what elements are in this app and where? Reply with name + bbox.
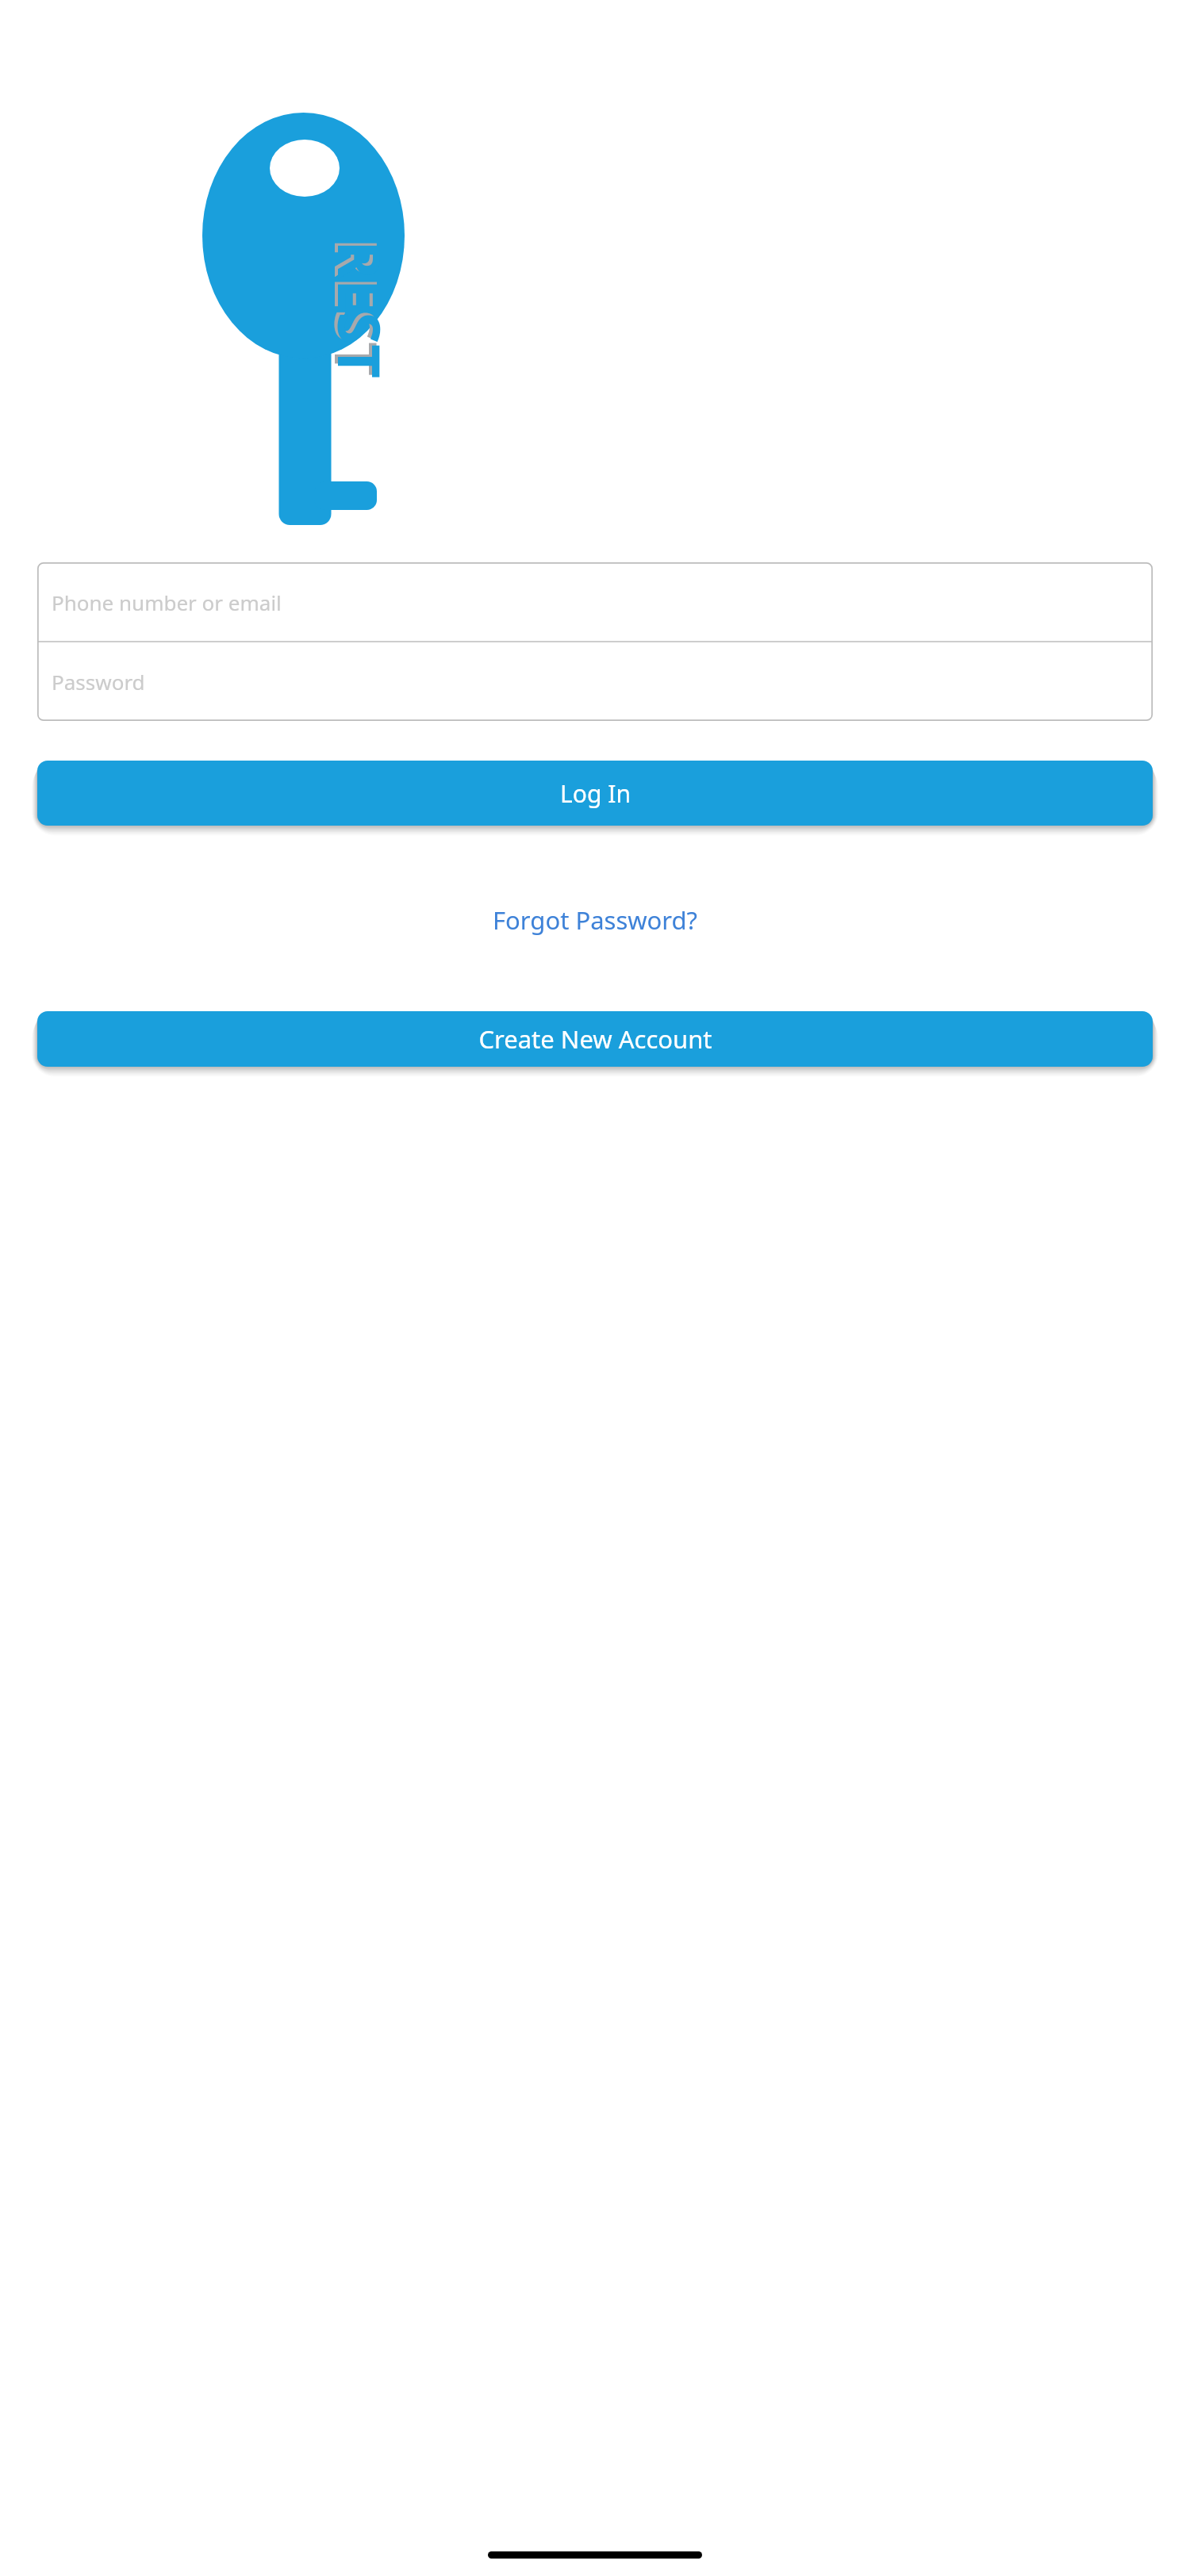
staticText: Forgot Password? bbox=[493, 903, 698, 937]
button[interactable]: Password bbox=[37, 642, 1153, 721]
staticText: Create New Account bbox=[478, 1022, 712, 1056]
staticText: Log In bbox=[560, 777, 631, 810]
staticText: Password bbox=[52, 668, 145, 696]
button[interactable]: Log In bbox=[37, 761, 1153, 826]
button[interactable]: Phone number or email bbox=[37, 562, 1153, 642]
staticText: Phone number or email bbox=[52, 588, 282, 616]
staticText: REST bbox=[317, 238, 397, 376]
button[interactable]: Create New Account bbox=[37, 1011, 1153, 1067]
button[interactable]: Forgot Password? bbox=[474, 894, 717, 946]
staticText: REST bbox=[320, 241, 400, 379]
other: REST logo bbox=[0, 113, 1190, 525]
